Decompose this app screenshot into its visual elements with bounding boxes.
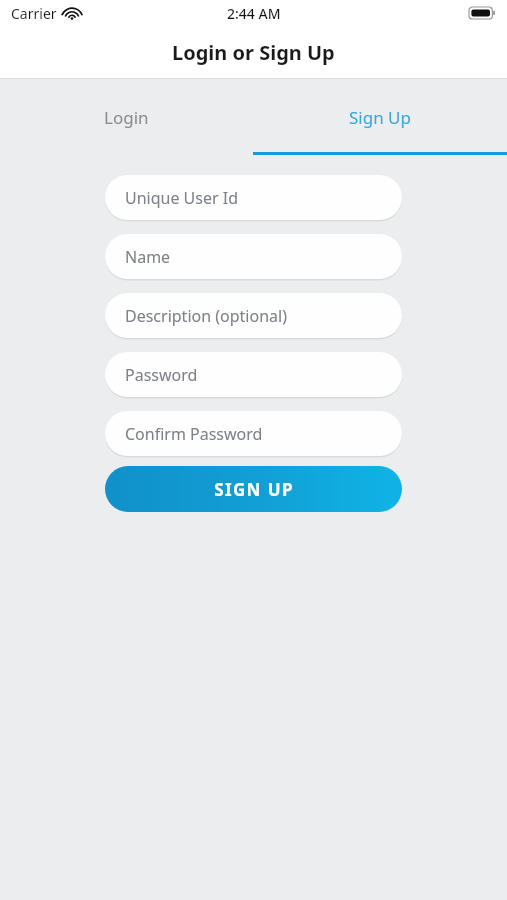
other: Wi-Fi signal [63,7,81,20]
staticText: Login [104,106,149,129]
staticText: Login or Sign Up [172,39,335,66]
other: Battery full [469,7,495,19]
staticText: Name [125,246,171,268]
staticText: SIGN UP [214,478,294,501]
button[interactable]: Name [105,234,402,279]
staticText: Description (optional) [125,305,287,327]
button[interactable]: Password [105,352,402,397]
button[interactable]: SIGN UP [105,466,402,512]
staticText: Password [125,364,198,386]
staticText: Sign Up [349,106,411,129]
staticText: 2:44 AM [227,4,281,23]
button[interactable]: Login [0,79,253,155]
staticText: Carrier [11,4,57,23]
staticText: Unique User Id [125,187,239,209]
staticText: Confirm Password [125,423,263,445]
button[interactable]: Unique User Id [105,175,402,220]
button[interactable]: Description (optional) [105,293,402,338]
button[interactable]: Sign Up [253,79,507,155]
button[interactable]: Confirm Password [105,411,402,456]
